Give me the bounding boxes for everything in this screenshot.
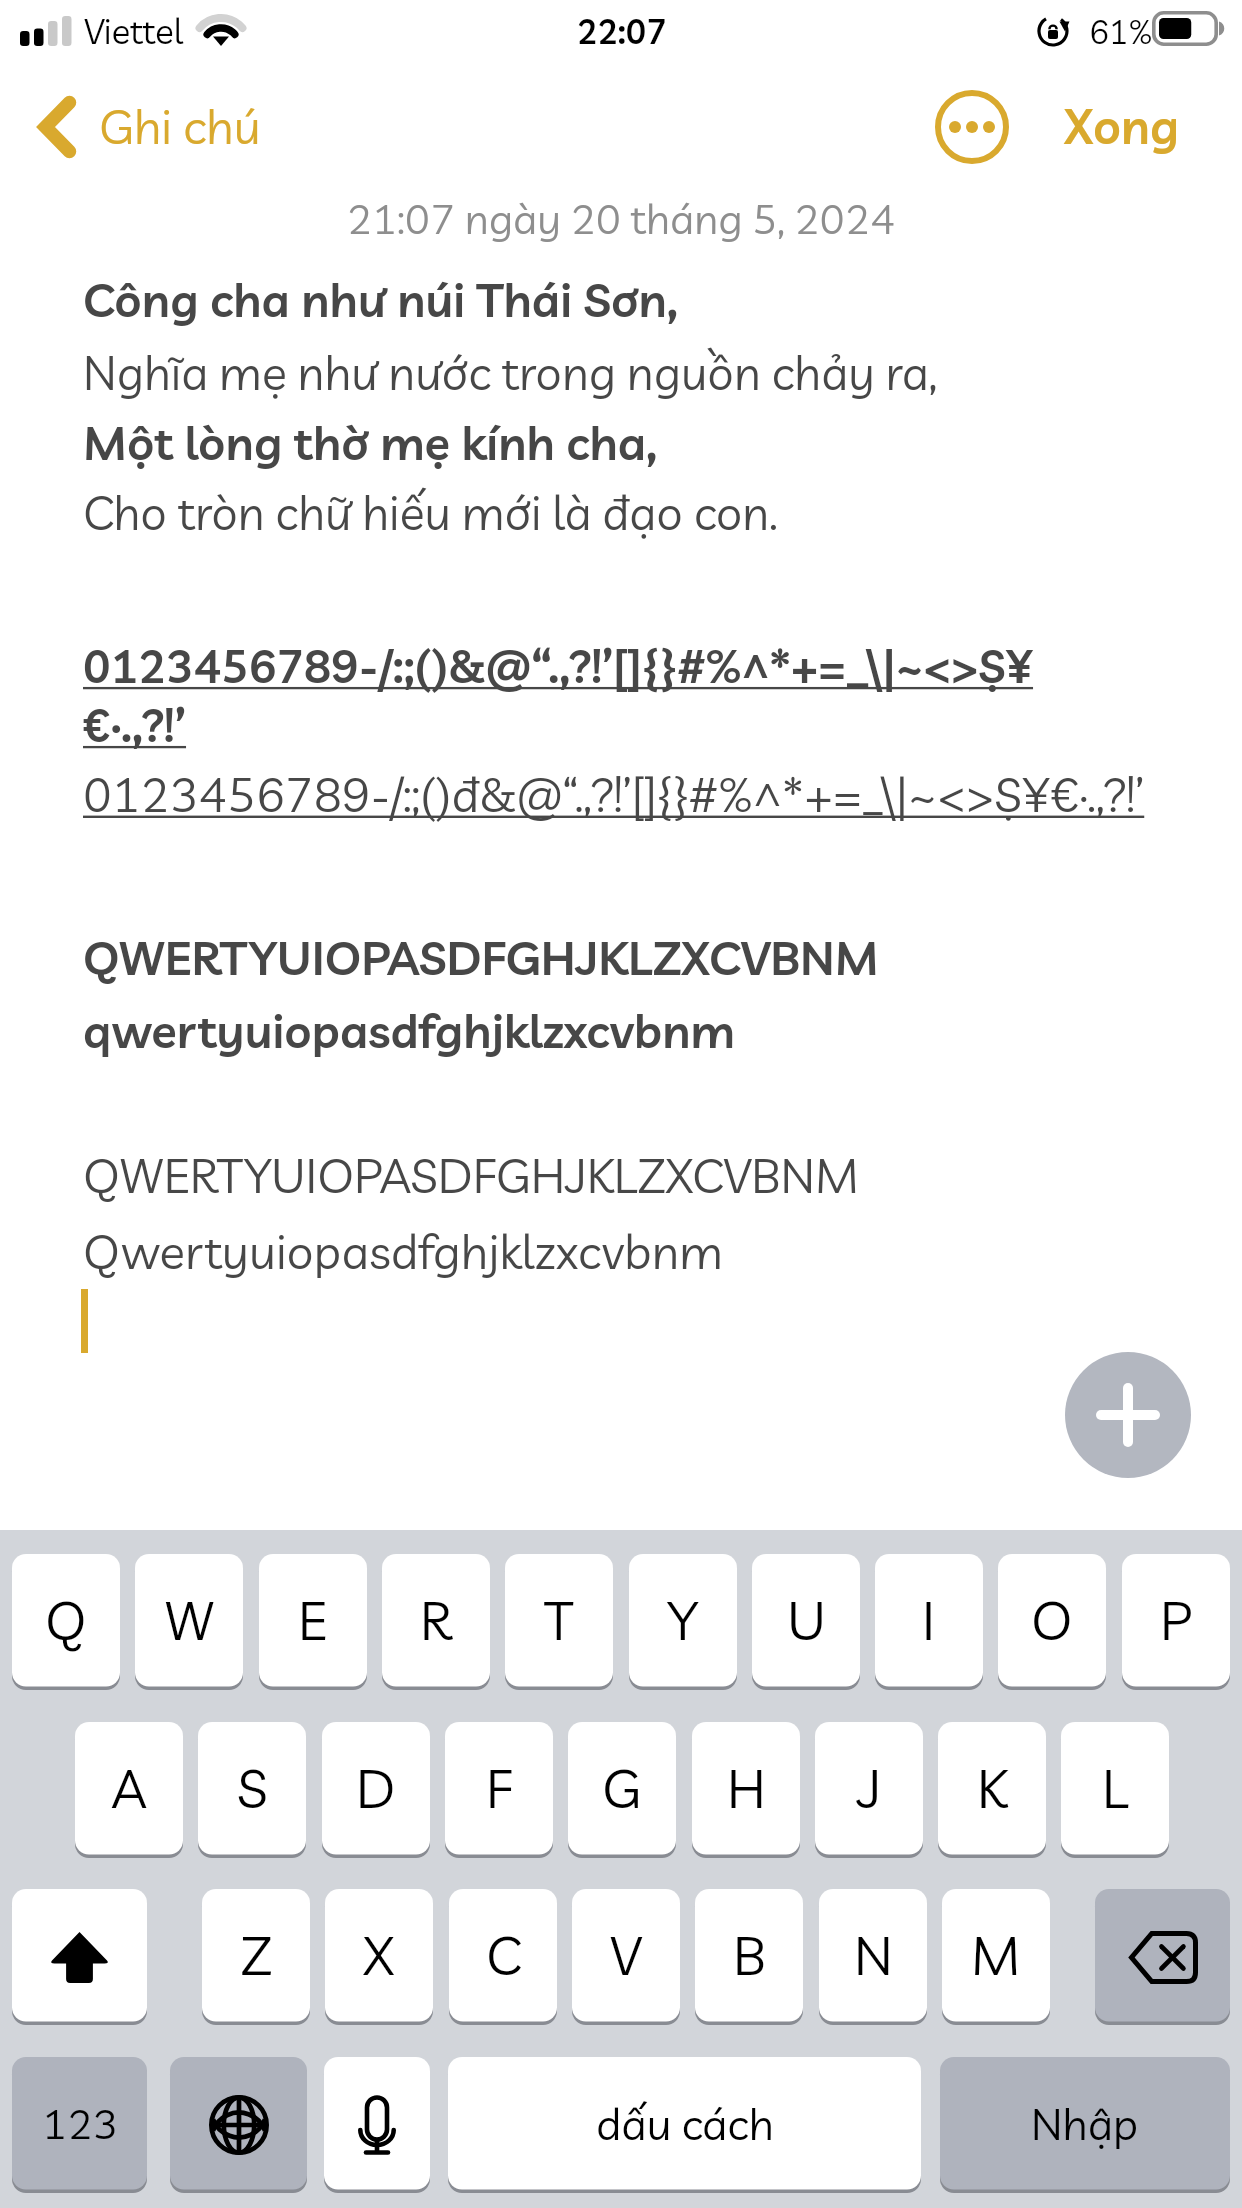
- staticText: Xong: [1064, 96, 1180, 156]
- staticText: O: [1031, 1586, 1073, 1654]
- button[interactable]: O: [998, 1554, 1106, 1690]
- staticText: N: [854, 1921, 893, 1989]
- staticText: €·.,?!’: [83, 696, 187, 754]
- staticText: 22:07: [577, 10, 667, 53]
- button[interactable]: P: [1122, 1554, 1230, 1690]
- button[interactable]: Add: [1065, 1352, 1191, 1478]
- staticText: dấu cách: [596, 2096, 774, 2151]
- staticText: QWERTYUIOPASDFGHJKLZXCVBNM: [83, 1145, 859, 1205]
- button[interactable]: C: [449, 1889, 557, 2025]
- staticText: I: [922, 1586, 936, 1654]
- button[interactable]: A: [75, 1722, 183, 1858]
- button[interactable]: Change language: [170, 2057, 307, 2193]
- staticText: 123: [42, 2097, 118, 2150]
- button[interactable]: K: [938, 1722, 1046, 1858]
- button[interactable]: Xong: [1050, 84, 1200, 170]
- staticText: qwertyuiopasdfghjklzxcvbnm: [83, 1001, 736, 1060]
- staticText: Z: [240, 1921, 273, 1989]
- staticText: Công cha như núi Thái Sơn,: [83, 270, 678, 329]
- button[interactable]: Y: [629, 1554, 737, 1690]
- staticText: S: [237, 1754, 268, 1822]
- staticText: J: [857, 1754, 882, 1822]
- staticText: Một lòng thờ mẹ kính cha,: [83, 413, 658, 472]
- button[interactable]: Shift: [12, 1889, 147, 2025]
- staticText: F: [486, 1754, 513, 1822]
- button[interactable]: Nhập: [940, 2057, 1230, 2193]
- staticText: U: [787, 1586, 826, 1654]
- button[interactable]: T: [505, 1554, 613, 1690]
- button[interactable]: R: [382, 1554, 490, 1690]
- button[interactable]: I: [875, 1554, 983, 1690]
- staticText: P: [1160, 1586, 1193, 1654]
- staticText: H: [727, 1754, 766, 1822]
- staticText: Nghĩa mẹ như nước trong nguồn chảy ra,: [83, 343, 938, 402]
- button[interactable]: Z: [202, 1889, 310, 2025]
- button[interactable]: Delete: [1095, 1889, 1230, 2025]
- staticText: D: [356, 1754, 396, 1822]
- staticText: K: [977, 1754, 1008, 1822]
- staticText: 0123456789-/:;()đ&@“.,?!’[]{}#%^*+=_\|~<…: [83, 764, 1145, 824]
- button[interactable]: M: [942, 1889, 1050, 2025]
- staticText: 0123456789-/:;()&@“.,?!’[]{}#%^*+=_\|~<>…: [83, 637, 1034, 695]
- staticText: E: [298, 1586, 328, 1654]
- staticText: V: [610, 1921, 642, 1989]
- button[interactable]: S: [198, 1722, 306, 1858]
- button[interactable]: D: [322, 1722, 430, 1858]
- button[interactable]: G: [568, 1722, 676, 1858]
- staticText: T: [544, 1586, 574, 1654]
- staticText: Qwertyuiopasdfghjklzxcvbnm: [83, 1221, 723, 1281]
- button[interactable]: X: [325, 1889, 433, 2025]
- staticText: C: [486, 1921, 521, 1989]
- button[interactable]: Q: [12, 1554, 120, 1690]
- staticText: R: [420, 1586, 452, 1654]
- staticText: W: [164, 1586, 215, 1654]
- button[interactable]: B: [695, 1889, 803, 2025]
- button[interactable]: F: [445, 1722, 553, 1858]
- button[interactable]: Dictate: [324, 2057, 430, 2193]
- button[interactable]: U: [752, 1554, 860, 1690]
- button[interactable]: N: [819, 1889, 927, 2025]
- staticText: Cho tròn chữ hiếu mới là đạo con.: [83, 483, 778, 542]
- button[interactable]: V: [572, 1889, 680, 2025]
- button[interactable]: More options: [926, 81, 1018, 173]
- staticText: B: [733, 1921, 766, 1989]
- staticText: 21:07 ngày 20 tháng 5, 2024: [0, 192, 1242, 245]
- button[interactable]: dấu cách: [448, 2057, 921, 2193]
- button[interactable]: H: [692, 1722, 800, 1858]
- button[interactable]: E: [259, 1554, 367, 1690]
- staticText: Ghi chú: [99, 96, 261, 156]
- button[interactable]: Back: [14, 84, 100, 170]
- button[interactable]: L: [1061, 1722, 1169, 1858]
- staticText: Nhập: [1031, 2096, 1139, 2151]
- staticText: A: [111, 1754, 148, 1822]
- button[interactable]: W: [135, 1554, 243, 1690]
- staticText: Q: [45, 1586, 87, 1654]
- staticText: Y: [668, 1586, 698, 1654]
- staticText: M: [971, 1921, 1021, 1989]
- button[interactable]: J: [815, 1722, 923, 1858]
- staticText: 61%: [1089, 11, 1153, 52]
- staticText: L: [1102, 1754, 1129, 1822]
- staticText: QWERTYUIOPASDFGHJKLZXCVBNM: [83, 928, 879, 987]
- button[interactable]: 123: [12, 2057, 147, 2193]
- staticText: G: [602, 1754, 642, 1822]
- staticText: X: [363, 1921, 395, 1989]
- button[interactable]: Ghi chú: [90, 84, 270, 170]
- staticText: Viettel: [84, 9, 184, 53]
